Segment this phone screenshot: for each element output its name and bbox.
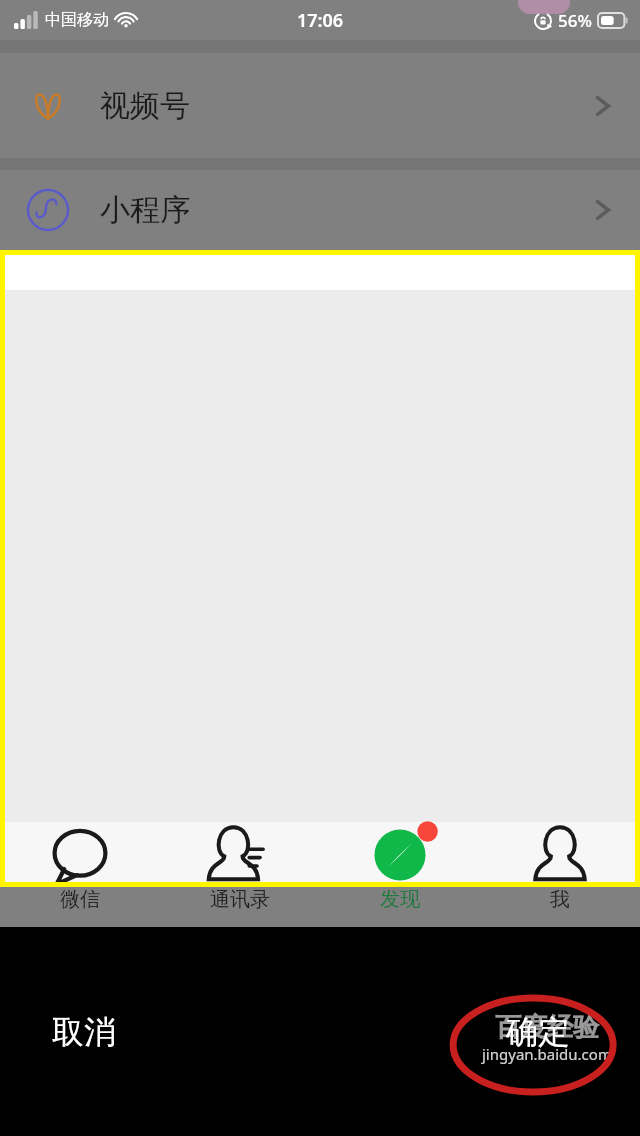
- button[interactable]: 发现: [320, 822, 480, 887]
- button[interactable]: 微信: [0, 822, 160, 887]
- button[interactable]: 确定: [494, 1002, 582, 1062]
- staticText: jingyan.baidu.com: [482, 1044, 612, 1064]
- button[interactable]: 取消: [40, 1002, 128, 1062]
- staticText: 17:06: [297, 8, 344, 33]
- staticText: 56%: [558, 9, 592, 32]
- staticText: 微信: [60, 887, 100, 912]
- button[interactable]: 我: [480, 822, 640, 887]
- button[interactable]: 微信: [0, 887, 160, 927]
- staticText: 取消: [52, 1012, 116, 1052]
- button[interactable]: 我: [480, 887, 640, 927]
- button[interactable]: 通讯录: [160, 887, 320, 927]
- button[interactable]: 通讯录: [160, 822, 320, 887]
- staticText: 我: [550, 887, 570, 912]
- staticText: 视频号: [100, 87, 190, 125]
- button[interactable]: 小程序: [0, 170, 640, 250]
- staticText: 中国移动: [45, 10, 109, 30]
- staticText: 通讯录: [210, 887, 270, 912]
- staticText: 确定: [506, 1012, 570, 1052]
- button[interactable]: 发现: [320, 887, 480, 927]
- staticText: 发现: [380, 887, 420, 912]
- button[interactable]: 视频号: [0, 53, 640, 158]
- staticText: 小程序: [100, 191, 190, 229]
- staticText: 百度经验: [495, 1011, 599, 1044]
